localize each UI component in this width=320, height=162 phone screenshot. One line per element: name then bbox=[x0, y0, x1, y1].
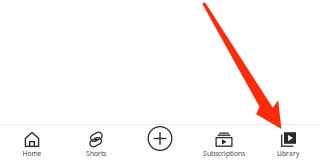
button[interactable]: Library bbox=[256, 125, 320, 162]
button[interactable]: Shorts bbox=[64, 125, 128, 162]
staticText: Shorts bbox=[86, 149, 106, 158]
staticText: Library bbox=[277, 149, 299, 158]
button[interactable]: Home bbox=[0, 125, 64, 162]
button[interactable]: Create bbox=[128, 125, 192, 162]
staticText: Home bbox=[22, 149, 41, 158]
staticText: Subscriptions bbox=[203, 149, 245, 158]
button[interactable]: Subscriptions bbox=[192, 125, 256, 162]
